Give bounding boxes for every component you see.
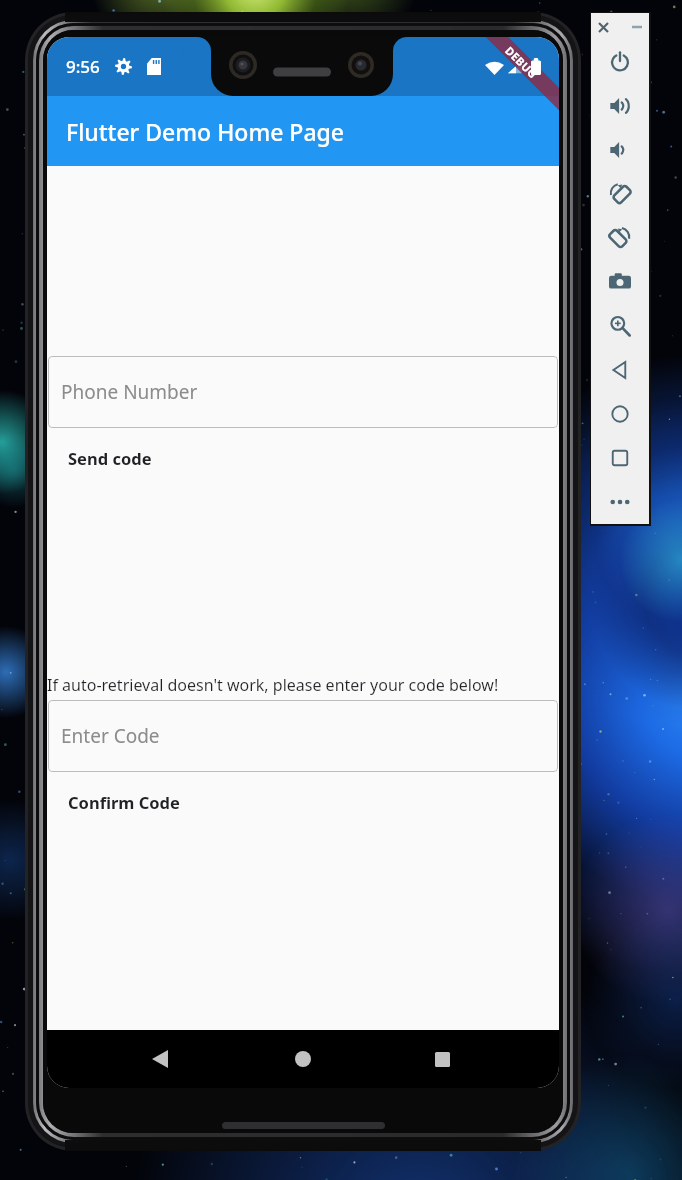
button[interactable]: Minimize	[626, 16, 648, 38]
staticText: Phone Number	[61, 379, 198, 405]
button[interactable]: Home	[279, 1035, 327, 1083]
button[interactable]: Home	[591, 392, 649, 436]
staticText: 9:56	[66, 55, 100, 78]
button[interactable]: Send code	[47, 428, 559, 488]
button[interactable]: Take screenshot	[591, 260, 649, 304]
button[interactable]: Volume down	[591, 128, 649, 172]
button[interactable]: Rotate right	[591, 216, 649, 260]
button[interactable]: Zoom	[591, 304, 649, 348]
button[interactable]: Volume up	[591, 84, 649, 128]
staticText: Send code	[68, 447, 152, 469]
staticText: Enter Code	[61, 723, 160, 749]
button[interactable]: Back	[591, 348, 649, 392]
button[interactable]: Confirm Code	[47, 772, 559, 832]
button[interactable]: Close	[592, 16, 614, 38]
button[interactable]: Enter Code	[48, 700, 558, 772]
button[interactable]: Overview	[591, 436, 649, 480]
button[interactable]: Back	[136, 1035, 184, 1083]
staticText: If auto-retrieval doesn't work, please e…	[47, 674, 499, 696]
staticText: Flutter Demo Home Page	[66, 116, 345, 147]
button[interactable]: More	[591, 480, 649, 524]
button[interactable]: Power	[591, 40, 649, 84]
button[interactable]: Phone Number	[48, 356, 558, 428]
button[interactable]: Recents	[418, 1035, 466, 1083]
staticText: Confirm Code	[68, 791, 180, 813]
staticText: DEBUG	[502, 43, 541, 82]
button[interactable]: Rotate left	[591, 172, 649, 216]
